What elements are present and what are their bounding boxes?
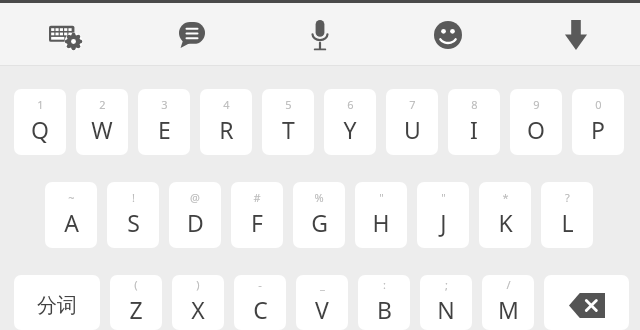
staticText: 7 <box>409 97 416 112</box>
staticText: 3 <box>161 97 168 112</box>
staticText: _ <box>320 277 325 292</box>
staticText: " <box>379 190 384 205</box>
staticText: 1 <box>37 97 44 112</box>
button[interactable]: / <box>482 275 534 330</box>
button[interactable]: % <box>293 182 345 248</box>
button[interactable]: " <box>417 182 469 248</box>
staticText: E <box>158 114 171 145</box>
staticText: ) <box>196 277 200 292</box>
staticText: M <box>498 294 519 325</box>
button[interactable]: " <box>355 182 407 248</box>
button[interactable]: 6 <box>324 89 376 155</box>
staticText: 5 <box>285 97 292 112</box>
button[interactable]: ~ <box>45 182 97 248</box>
staticText: I <box>470 114 478 145</box>
staticText: " <box>441 190 446 205</box>
staticText: V <box>315 294 329 325</box>
button[interactable]: Backspace <box>544 275 629 330</box>
staticText: @ <box>190 190 200 205</box>
staticText: K <box>498 207 513 238</box>
staticText: N <box>437 294 455 325</box>
staticText: : <box>383 277 386 292</box>
button[interactable]: 分词 <box>14 275 100 330</box>
staticText: T <box>282 114 295 145</box>
button[interactable]: - <box>234 275 286 330</box>
button[interactable]: 7 <box>386 89 438 155</box>
staticText: 2 <box>99 97 106 112</box>
staticText: 8 <box>471 97 478 112</box>
staticText: 6 <box>347 97 354 112</box>
staticText: * <box>502 190 509 205</box>
button[interactable]: Voice input <box>256 5 384 65</box>
button[interactable]: 3 <box>138 89 190 155</box>
button[interactable]: Keyboard settings <box>0 5 128 65</box>
staticText: 0 <box>595 97 602 112</box>
staticText: O <box>527 114 545 145</box>
button[interactable]: 5 <box>262 89 314 155</box>
button[interactable]: @ <box>169 182 221 248</box>
staticText: D <box>187 207 204 238</box>
button[interactable]: Messages <box>128 5 256 65</box>
button[interactable]: : <box>358 275 410 330</box>
staticText: Q <box>31 114 49 145</box>
staticText: U <box>404 114 421 145</box>
staticText: S <box>127 207 140 238</box>
button[interactable]: ( <box>110 275 162 330</box>
staticText: C <box>253 294 268 325</box>
staticText: A <box>64 207 79 238</box>
staticText: G <box>311 207 328 238</box>
button[interactable]: 0 <box>572 89 624 155</box>
staticText: % <box>314 190 324 205</box>
staticText: 4 <box>223 97 230 112</box>
button[interactable]: * <box>479 182 531 248</box>
button[interactable]: Emoji <box>384 5 512 65</box>
staticText: L <box>561 207 574 238</box>
staticText: ; <box>445 277 448 292</box>
staticText: X <box>191 294 205 325</box>
staticText: / <box>506 277 511 292</box>
button[interactable]: ) <box>172 275 224 330</box>
staticText: ( <box>134 277 138 292</box>
button[interactable]: 9 <box>510 89 562 155</box>
button[interactable]: _ <box>296 275 348 330</box>
button[interactable]: # <box>231 182 283 248</box>
staticText: B <box>377 294 392 325</box>
staticText: J <box>440 207 447 238</box>
staticText: H <box>372 207 390 238</box>
staticText: W <box>91 114 113 145</box>
staticText: 分词 <box>37 293 77 318</box>
staticText: Y <box>343 114 357 145</box>
button[interactable]: 1 <box>14 89 66 155</box>
staticText: R <box>219 114 234 145</box>
staticText: # <box>253 190 261 205</box>
button[interactable]: Hide keyboard <box>512 5 640 65</box>
button[interactable]: ! <box>107 182 159 248</box>
button[interactable]: 4 <box>200 89 252 155</box>
staticText: ! <box>132 190 135 205</box>
button[interactable]: ; <box>420 275 472 330</box>
button[interactable]: ? <box>541 182 593 248</box>
staticText: ? <box>565 190 570 205</box>
staticText: ~ <box>68 190 75 205</box>
button[interactable]: 8 <box>448 89 500 155</box>
staticText: Z <box>129 294 143 325</box>
staticText: - <box>258 277 262 292</box>
staticText: 9 <box>533 97 540 112</box>
button[interactable]: 2 <box>76 89 128 155</box>
staticText: F <box>251 207 263 238</box>
staticText: P <box>591 114 605 145</box>
